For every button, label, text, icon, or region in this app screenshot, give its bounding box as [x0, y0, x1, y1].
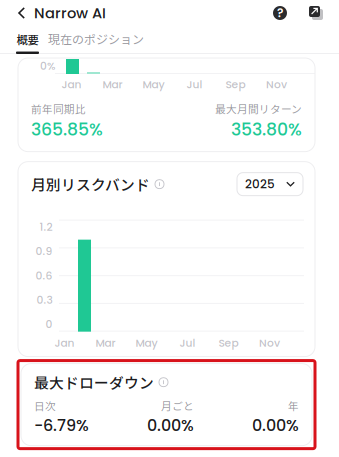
- staticText: 月ごと: [161, 398, 194, 413]
- staticText: Nov: [266, 77, 287, 92]
- staticText: 0.6: [35, 268, 52, 283]
- staticText: 前年同期比: [31, 101, 86, 116]
- staticText: Nov: [259, 336, 280, 350]
- button[interactable]: Narrow AI: [0, 0, 106, 26]
- staticText: Jul: [179, 336, 195, 350]
- staticText: 年: [288, 398, 299, 413]
- staticText: 概要: [16, 31, 38, 47]
- staticText: Jan: [61, 77, 81, 92]
- staticText: May: [142, 77, 164, 92]
- button[interactable]: 2025: [237, 173, 303, 196]
- staticText: 0: [45, 317, 52, 332]
- staticText: May: [135, 336, 157, 350]
- staticText: Jul: [186, 77, 202, 92]
- button[interactable]: 現在のポジション: [39, 30, 144, 54]
- staticText: Sep: [225, 77, 245, 92]
- staticText: 0.00%: [147, 414, 194, 437]
- staticText: Jan: [54, 336, 74, 350]
- staticText: 365.85%: [31, 117, 103, 142]
- staticText: ?: [277, 5, 283, 21]
- staticText: Narrow AI: [34, 3, 106, 23]
- staticText: 0%: [40, 58, 55, 73]
- button[interactable]: Share: [309, 6, 323, 20]
- staticText: 1.2: [39, 220, 52, 234]
- staticText: 現在のポジション: [48, 30, 144, 47]
- staticText: Sep: [218, 336, 238, 350]
- staticText: 月別リスクバンド: [31, 173, 150, 195]
- button[interactable]: 概要: [0, 31, 39, 54]
- staticText: 日次: [34, 398, 56, 413]
- staticText: 2025: [245, 176, 275, 192]
- staticText: -6.79%: [34, 414, 89, 437]
- staticText: 最大月間リターン: [215, 101, 302, 116]
- staticText: 0.9: [35, 244, 52, 259]
- staticText: 353.80%: [231, 117, 302, 142]
- staticText: 0.00%: [252, 414, 299, 437]
- staticText: 0.3: [36, 292, 52, 307]
- button[interactable]: Help: [273, 6, 287, 20]
- staticText: Mar: [95, 336, 115, 350]
- staticText: 最大ドローダウン: [34, 372, 154, 393]
- staticText: Mar: [102, 77, 122, 92]
